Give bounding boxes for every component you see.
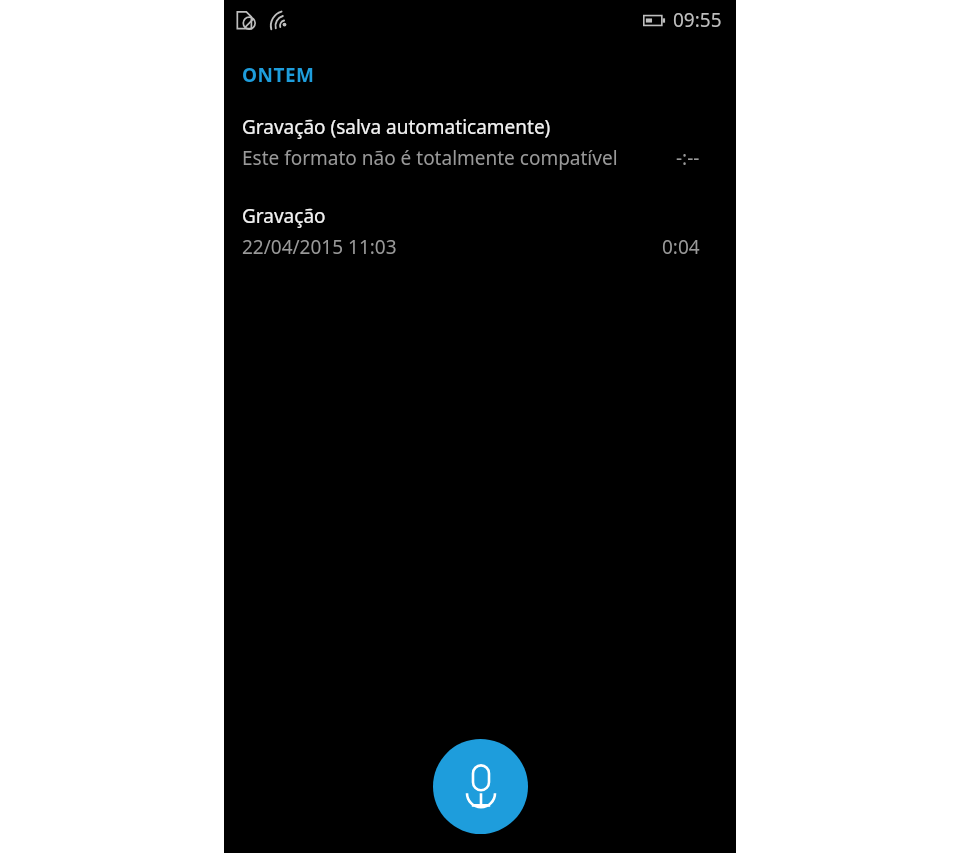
staticText: 09:55: [673, 7, 722, 33]
staticText: Gravação: [242, 203, 326, 229]
staticText: 0:04: [662, 234, 700, 260]
staticText: ONTEM: [242, 62, 315, 88]
staticText: Este formato não é totalmente compatível: [242, 145, 618, 171]
button[interactable]: Gravar: [433, 739, 528, 834]
button[interactable]: Gravação (salva automaticamente): [224, 114, 736, 171]
staticText: Gravação (salva automaticamente): [242, 114, 551, 140]
staticText: -:--: [676, 145, 700, 171]
staticText: 22/04/2015 11:03: [242, 234, 397, 260]
button[interactable]: Gravação: [224, 203, 736, 260]
